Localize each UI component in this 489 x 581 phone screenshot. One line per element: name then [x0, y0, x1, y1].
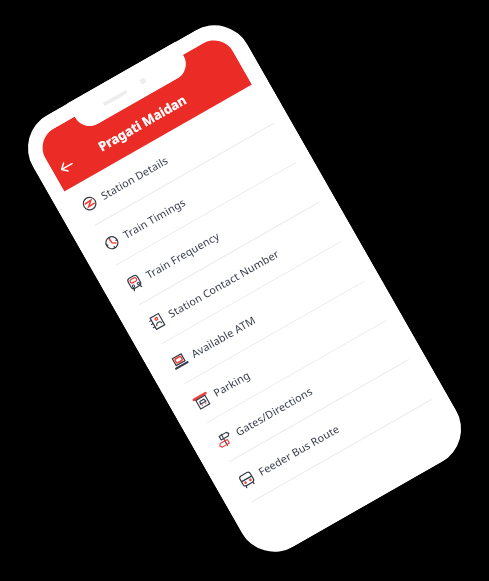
- staticText: Train Frequency: [143, 228, 222, 282]
- staticText: Feeder Bus Route: [255, 421, 342, 479]
- staticText: Station Contact Number: [165, 245, 282, 321]
- button[interactable]: Station Contact Number: [132, 203, 342, 349]
- button[interactable]: Gates/Directions: [199, 321, 409, 467]
- staticText: Parking: [210, 367, 252, 400]
- button[interactable]: Train Frequency: [109, 164, 319, 310]
- staticText: Available ATM: [188, 312, 258, 361]
- staticText: Pragati Maidan: [95, 91, 189, 155]
- button[interactable]: Back: [50, 150, 82, 183]
- button[interactable]: Station Details: [64, 84, 274, 231]
- staticText: Gates/Directions: [232, 383, 315, 439]
- button[interactable]: Available ATM: [154, 243, 364, 389]
- button[interactable]: Train Timings: [87, 124, 296, 270]
- staticText: Station Details: [98, 153, 170, 203]
- button[interactable]: Parking: [177, 282, 387, 428]
- staticText: Train Timings: [120, 194, 188, 242]
- button[interactable]: Feeder Bus Route: [222, 361, 432, 507]
